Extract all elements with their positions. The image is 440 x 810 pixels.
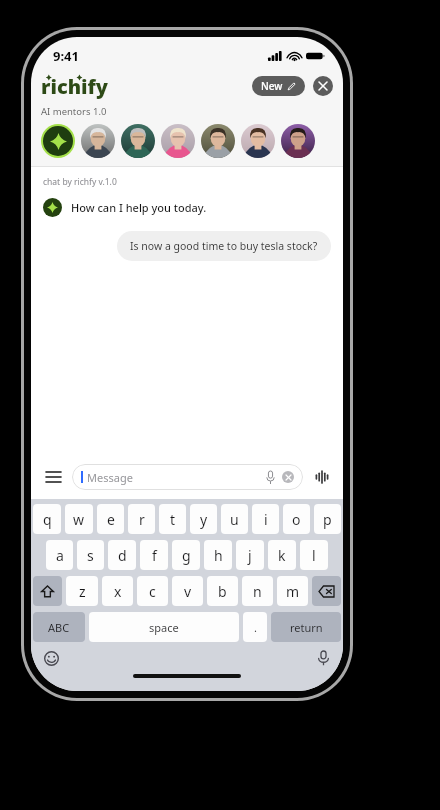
staticText: y [200, 510, 208, 529]
button[interactable]: k [268, 540, 296, 570]
button[interactable]: a [46, 540, 73, 570]
staticText: q [43, 510, 52, 529]
button[interactable]: return [271, 612, 341, 642]
staticText: richify [41, 73, 109, 100]
staticText: New [261, 79, 283, 93]
button[interactable]: x [102, 576, 133, 606]
button[interactable]: w [65, 504, 93, 534]
staticText: i [264, 510, 268, 529]
button[interactable]: g [172, 540, 200, 570]
button[interactable]: Voice waveform [312, 467, 332, 487]
button[interactable]: Close [313, 76, 333, 96]
staticText: How can I help you today. [71, 200, 207, 215]
staticText: a [56, 546, 64, 565]
button[interactable]: u [221, 504, 248, 534]
button[interactable]: . [243, 612, 267, 642]
staticText: m [286, 582, 300, 601]
staticText: n [253, 582, 262, 601]
button[interactable]: m [277, 576, 308, 606]
button[interactable]: e [97, 504, 124, 534]
button[interactable]: Mentor [281, 124, 315, 158]
button[interactable]: Key [312, 576, 341, 606]
button[interactable]: Message [72, 464, 303, 490]
button[interactable]: Richify AI [41, 124, 75, 158]
button[interactable]: q [33, 504, 61, 534]
button[interactable]: Is now a good time to buy tesla stock? [117, 231, 331, 261]
button[interactable]: Mentor [201, 124, 235, 158]
staticText: j [248, 546, 252, 565]
staticText: u [230, 510, 239, 529]
staticText: d [118, 546, 127, 565]
staticText: v [184, 582, 192, 601]
staticText: space [149, 620, 179, 635]
button[interactable]: s [77, 540, 104, 570]
button[interactable]: Mentor [241, 124, 275, 158]
button[interactable]: n [242, 576, 273, 606]
staticText: e [107, 510, 115, 529]
staticText: g [182, 546, 191, 565]
staticText: f [152, 546, 157, 565]
staticText: b [218, 582, 227, 601]
staticText: x [114, 582, 122, 601]
button[interactable]: Emoji [41, 648, 61, 668]
staticText: Is now a good time to buy tesla stock? [130, 239, 318, 253]
button[interactable]: v [172, 576, 203, 606]
staticText: z [79, 582, 86, 601]
button[interactable]: c [137, 576, 168, 606]
staticText: p [323, 510, 332, 529]
button[interactable]: richify [41, 73, 109, 100]
button[interactable]: l [300, 540, 328, 570]
staticText: l [312, 546, 316, 565]
staticText: t [170, 510, 176, 529]
staticText: Message [87, 470, 133, 485]
button[interactable]: b [207, 576, 238, 606]
button[interactable]: New [252, 76, 305, 96]
button[interactable]: Menu [42, 466, 64, 488]
button[interactable]: j [236, 540, 264, 570]
button[interactable]: y [190, 504, 217, 534]
button[interactable]: z [66, 576, 98, 606]
button[interactable]: Mentor [121, 124, 155, 158]
button[interactable]: space [89, 612, 239, 642]
button[interactable]: t [159, 504, 186, 534]
staticText: r [139, 510, 145, 529]
button[interactable]: i [252, 504, 279, 534]
button[interactable]: Key [33, 576, 62, 606]
staticText: s [87, 546, 94, 565]
button[interactable]: Mentor [81, 124, 115, 158]
staticText: k [278, 546, 286, 565]
button[interactable]: h [204, 540, 232, 570]
button[interactable]: f [140, 540, 168, 570]
staticText: o [292, 510, 301, 529]
staticText: . [254, 620, 257, 635]
other: Dictate [266, 471, 275, 484]
button[interactable]: r [128, 504, 155, 534]
staticText: AI mentors 1.0 [41, 105, 107, 118]
staticText: ABC [48, 620, 70, 635]
staticText: c [149, 582, 156, 601]
button[interactable]: Mentor [161, 124, 195, 158]
button[interactable]: o [283, 504, 310, 534]
staticText: return [290, 620, 323, 635]
staticText: chat by richfy v.1.0 [43, 176, 117, 188]
button[interactable]: p [314, 504, 341, 534]
staticText: w [73, 510, 85, 529]
staticText: 9:41 [53, 47, 79, 65]
button[interactable]: Clear [282, 471, 294, 483]
button[interactable]: Dictation [313, 648, 333, 668]
staticText: h [214, 546, 223, 565]
button[interactable]: ABC [33, 612, 85, 642]
button[interactable]: d [108, 540, 136, 570]
